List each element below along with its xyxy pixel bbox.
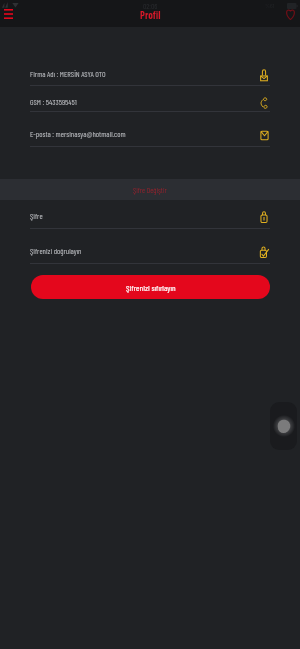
button[interactable]: GSM : 5433595451 bbox=[0, 91, 300, 112]
staticText: Şifre bbox=[30, 211, 43, 220]
staticText: Şifrenizi doğrulayın bbox=[30, 246, 82, 255]
staticText: Firma Adı : MERSİN ASYA OTO bbox=[30, 69, 106, 78]
staticText: E-posta : mersinasya@hotmail.com bbox=[30, 129, 126, 138]
staticText: Profil bbox=[140, 8, 161, 21]
staticText: GSM : 5433595451 bbox=[30, 97, 77, 106]
button[interactable]: Şifre bbox=[0, 205, 300, 229]
button[interactable]: Firma Adı : MERSİN ASYA OTO bbox=[0, 63, 300, 86]
button[interactable]: Menu bbox=[4, 9, 13, 19]
staticText: Şifre Değiştir bbox=[133, 185, 167, 194]
staticText: 02:06 bbox=[143, 1, 158, 10]
button[interactable]: Floating control bbox=[270, 402, 297, 450]
button[interactable]: E-posta : mersinasya@hotmail.com bbox=[0, 123, 300, 147]
button[interactable]: Şifrenizi doğrulayın bbox=[0, 240, 300, 264]
staticText: Şifrenizi sıfırlayın bbox=[126, 282, 176, 292]
button[interactable]: Favorites bbox=[286, 8, 295, 20]
button[interactable]: Şifrenizi sıfırlayın bbox=[31, 275, 270, 299]
button[interactable]: Şifre Değiştir bbox=[0, 179, 300, 200]
